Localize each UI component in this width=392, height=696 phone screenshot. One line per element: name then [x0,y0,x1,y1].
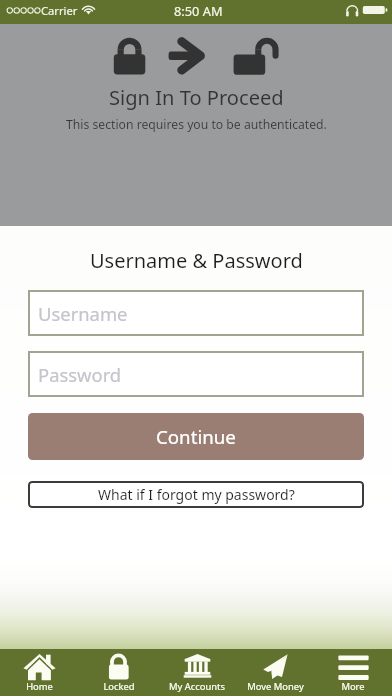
staticText: 8:50 AM [174,2,223,19]
button[interactable]: Locked [79,649,158,696]
staticText: Continue [156,424,236,449]
staticText: Username [38,301,128,326]
button[interactable]: Username [28,290,364,336]
button[interactable]: Continue [28,413,364,460]
button[interactable]: Move Money [236,649,314,696]
staticText: Carrier [41,3,78,18]
staticText: Move Money [247,680,304,693]
staticText: Home [26,680,53,693]
staticText: Password [38,362,122,387]
button[interactable]: Home [0,649,79,696]
staticText: What if I forgot my password? [98,485,295,504]
button[interactable]: Password [28,351,364,397]
button[interactable]: What if I forgot my password? [28,481,364,508]
staticText: This section requires you to be authenti… [66,116,327,133]
button[interactable]: More [314,649,392,696]
staticText: Username & Password [90,247,303,274]
staticText: Locked [103,680,135,693]
staticText: My Accounts [169,680,225,693]
staticText: More [341,680,365,693]
button[interactable]: My Accounts [158,649,236,696]
staticText: Sign In To Proceed [109,84,284,111]
